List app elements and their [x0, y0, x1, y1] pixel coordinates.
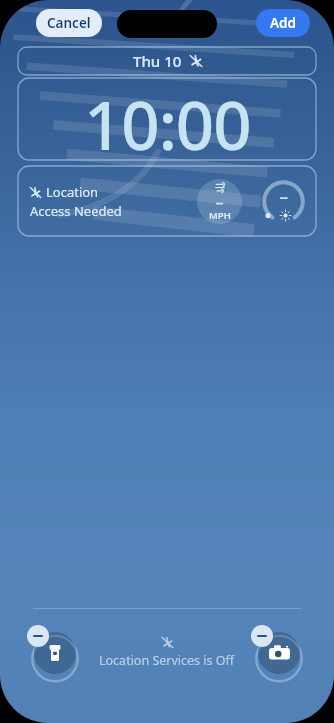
staticText: Cancel [47, 14, 91, 32]
button[interactable]: Location [30, 183, 197, 220]
button[interactable]: 10:00 [18, 78, 316, 160]
staticText: Thu 10 [133, 51, 182, 71]
button[interactable]: Cancel [36, 9, 102, 37]
staticText: MPH [209, 209, 231, 222]
button[interactable]: UV index [260, 178, 307, 225]
staticText: Access Needed [30, 202, 122, 220]
staticText: Add [270, 14, 296, 32]
staticText: Location Services is Off [99, 652, 235, 669]
button[interactable]: Add [256, 9, 310, 37]
button[interactable]: Wind speed [197, 179, 242, 224]
button[interactable]: Thu 10 [18, 47, 316, 75]
staticText: 10:00 [84, 78, 251, 160]
staticText: -- [216, 194, 224, 209]
button[interactable]: Flashlight [34, 632, 76, 674]
button[interactable]: Camera [258, 632, 300, 674]
staticText: -- [280, 189, 288, 205]
staticText: Location [46, 183, 99, 201]
